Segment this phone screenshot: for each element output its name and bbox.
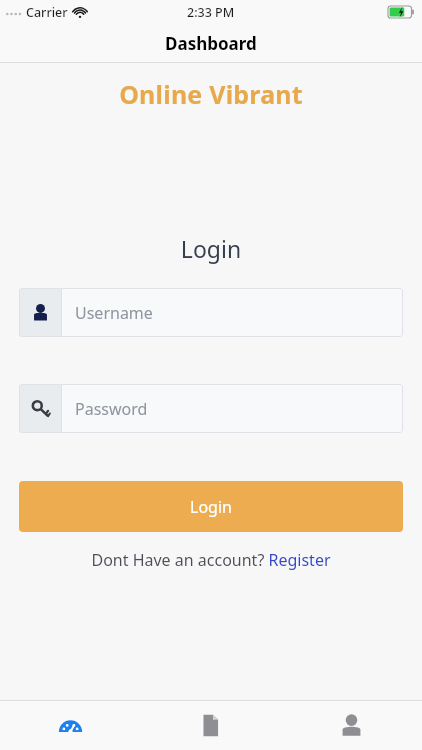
staticText: Login xyxy=(0,233,422,264)
staticText: Password xyxy=(75,398,148,420)
button[interactable]: Dashboard xyxy=(0,701,140,750)
button[interactable]: Dont Have an account? Register xyxy=(0,549,422,571)
staticText: Online Vibrant xyxy=(0,77,422,111)
staticText: Dashboard xyxy=(165,32,257,55)
staticText: Carrier xyxy=(26,4,68,21)
staticText: Dont Have an account? Register xyxy=(91,549,331,571)
button[interactable]: Username xyxy=(19,288,403,337)
button[interactable]: Profile xyxy=(281,701,422,750)
staticText: 2:33 PM xyxy=(187,4,235,21)
button[interactable]: Login xyxy=(19,481,403,532)
button[interactable]: Documents xyxy=(140,701,281,750)
staticText: Username xyxy=(75,302,153,324)
staticText: Login xyxy=(190,496,232,518)
button[interactable]: Password xyxy=(19,384,403,433)
